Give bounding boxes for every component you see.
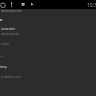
staticText: eiusm bbox=[1, 42, 9, 46]
button[interactable]: Play bbox=[30, 2, 35, 7]
button[interactable]: App bbox=[21, 2, 26, 7]
staticText: consectetu bbox=[1, 27, 16, 31]
staticText: 10:3 bbox=[87, 2, 96, 9]
staticText: lorem ipsum do bbox=[1, 9, 22, 13]
staticText: adipiscing elit, bbox=[1, 32, 20, 36]
button[interactable]: Alert bbox=[10, 1, 14, 8]
staticText: ut bbox=[0, 54, 3, 57]
staticText: temp bbox=[0, 65, 7, 69]
button[interactable]: Notifications bbox=[0, 2, 6, 8]
staticText: incididunt ut la bbox=[1, 75, 21, 79]
